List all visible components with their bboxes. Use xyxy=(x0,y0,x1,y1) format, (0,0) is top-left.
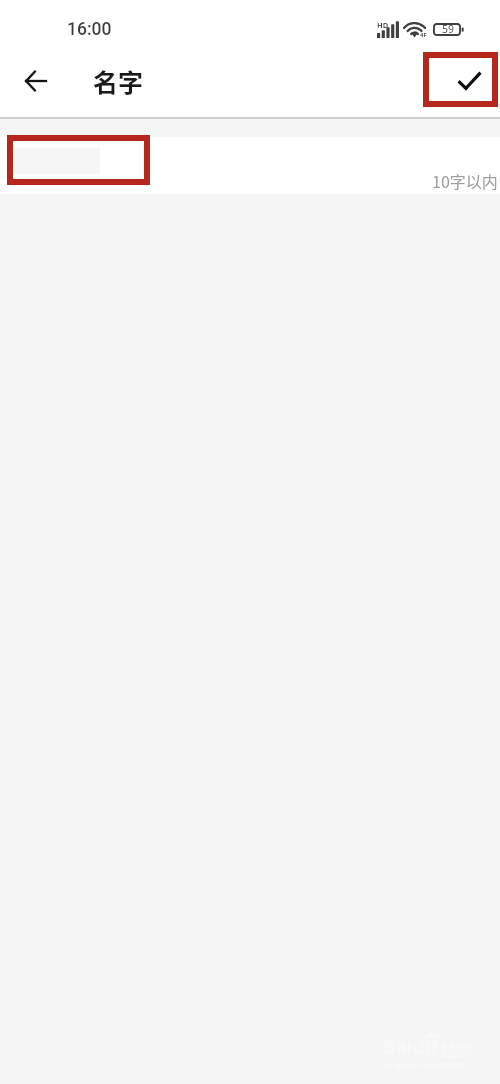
staticText: 名字 xyxy=(93,63,144,99)
staticText: 16:00 xyxy=(67,19,112,40)
button[interactable]: Name text field xyxy=(0,137,500,194)
staticText: 59 xyxy=(442,22,455,35)
button[interactable]: Back xyxy=(12,57,59,105)
staticText: 4F xyxy=(420,31,427,39)
button[interactable]: Confirm xyxy=(446,58,492,104)
staticText: HD xyxy=(377,20,389,30)
staticText: 10字以内 xyxy=(432,169,498,192)
